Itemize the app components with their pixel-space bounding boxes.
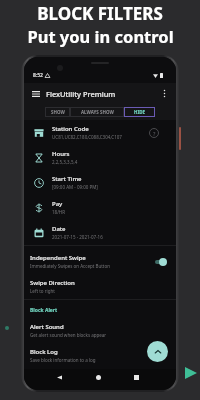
staticText: Pay [52, 200, 63, 208]
button[interactable]: Hours [24, 145, 176, 170]
staticText: Station Code [52, 125, 89, 133]
button[interactable]: More options [158, 87, 171, 100]
staticText: Save block information to a log [30, 357, 96, 363]
button[interactable]: HIDE [124, 107, 155, 117]
staticText: [09:00 AM - 09:00 PM] [52, 184, 98, 190]
staticText: Alert Sound [30, 323, 64, 331]
staticText: HIDE [134, 109, 146, 115]
staticText: SHOW [51, 109, 65, 115]
staticText: Get alert sound when blocks appear [30, 332, 107, 338]
button[interactable]: Home [92, 371, 105, 384]
staticText: 8:52 [33, 72, 43, 79]
button[interactable]: Alert Sound [24, 318, 176, 343]
button[interactable]: Date [24, 220, 176, 245]
staticText: 2021-07-15 - 2021-07-16 [52, 234, 103, 240]
staticText: Immediately Swipes on Accept Button [30, 263, 110, 269]
button[interactable]: Station Code [24, 120, 176, 145]
staticText: Block Alert [30, 307, 58, 314]
button[interactable]: Navigation menu [29, 87, 42, 100]
button[interactable]: ALWAYS SHOW [70, 107, 124, 117]
staticText: FlexUtility Premium [46, 89, 116, 99]
button[interactable]: Scroll to top [147, 341, 168, 362]
staticText: Block Log [30, 348, 58, 356]
staticText: Start Time [52, 175, 82, 183]
button[interactable]: Recent apps [130, 371, 143, 384]
button[interactable]: Independent Swipe [24, 249, 176, 274]
button[interactable]: Swipe Direction [24, 274, 176, 299]
button[interactable]: Back [53, 371, 66, 384]
staticText: BLOCK FILTERS [37, 2, 163, 25]
button[interactable]: Pay [24, 195, 176, 220]
button[interactable]: SHOW [45, 107, 70, 117]
button[interactable]: Help [148, 127, 160, 139]
button[interactable]: Block Log [24, 343, 176, 368]
staticText: 2,2,5,3,3,5,4 [52, 159, 78, 165]
staticText: Hours [52, 150, 70, 158]
staticText: 18/HR [52, 209, 65, 215]
staticText: ALWAYS SHOW [81, 109, 114, 115]
staticText: Date [52, 225, 66, 233]
staticText: UC81,UC82,C180,C088,C304,C107 [52, 134, 122, 140]
staticText: ? [153, 130, 156, 137]
staticText: Independent Swipe [30, 254, 86, 262]
staticText: Put you in control [27, 25, 174, 47]
staticText: Swipe Direction [30, 279, 75, 287]
staticText: Left to right [30, 288, 55, 294]
button[interactable]: Start Time [24, 170, 176, 195]
